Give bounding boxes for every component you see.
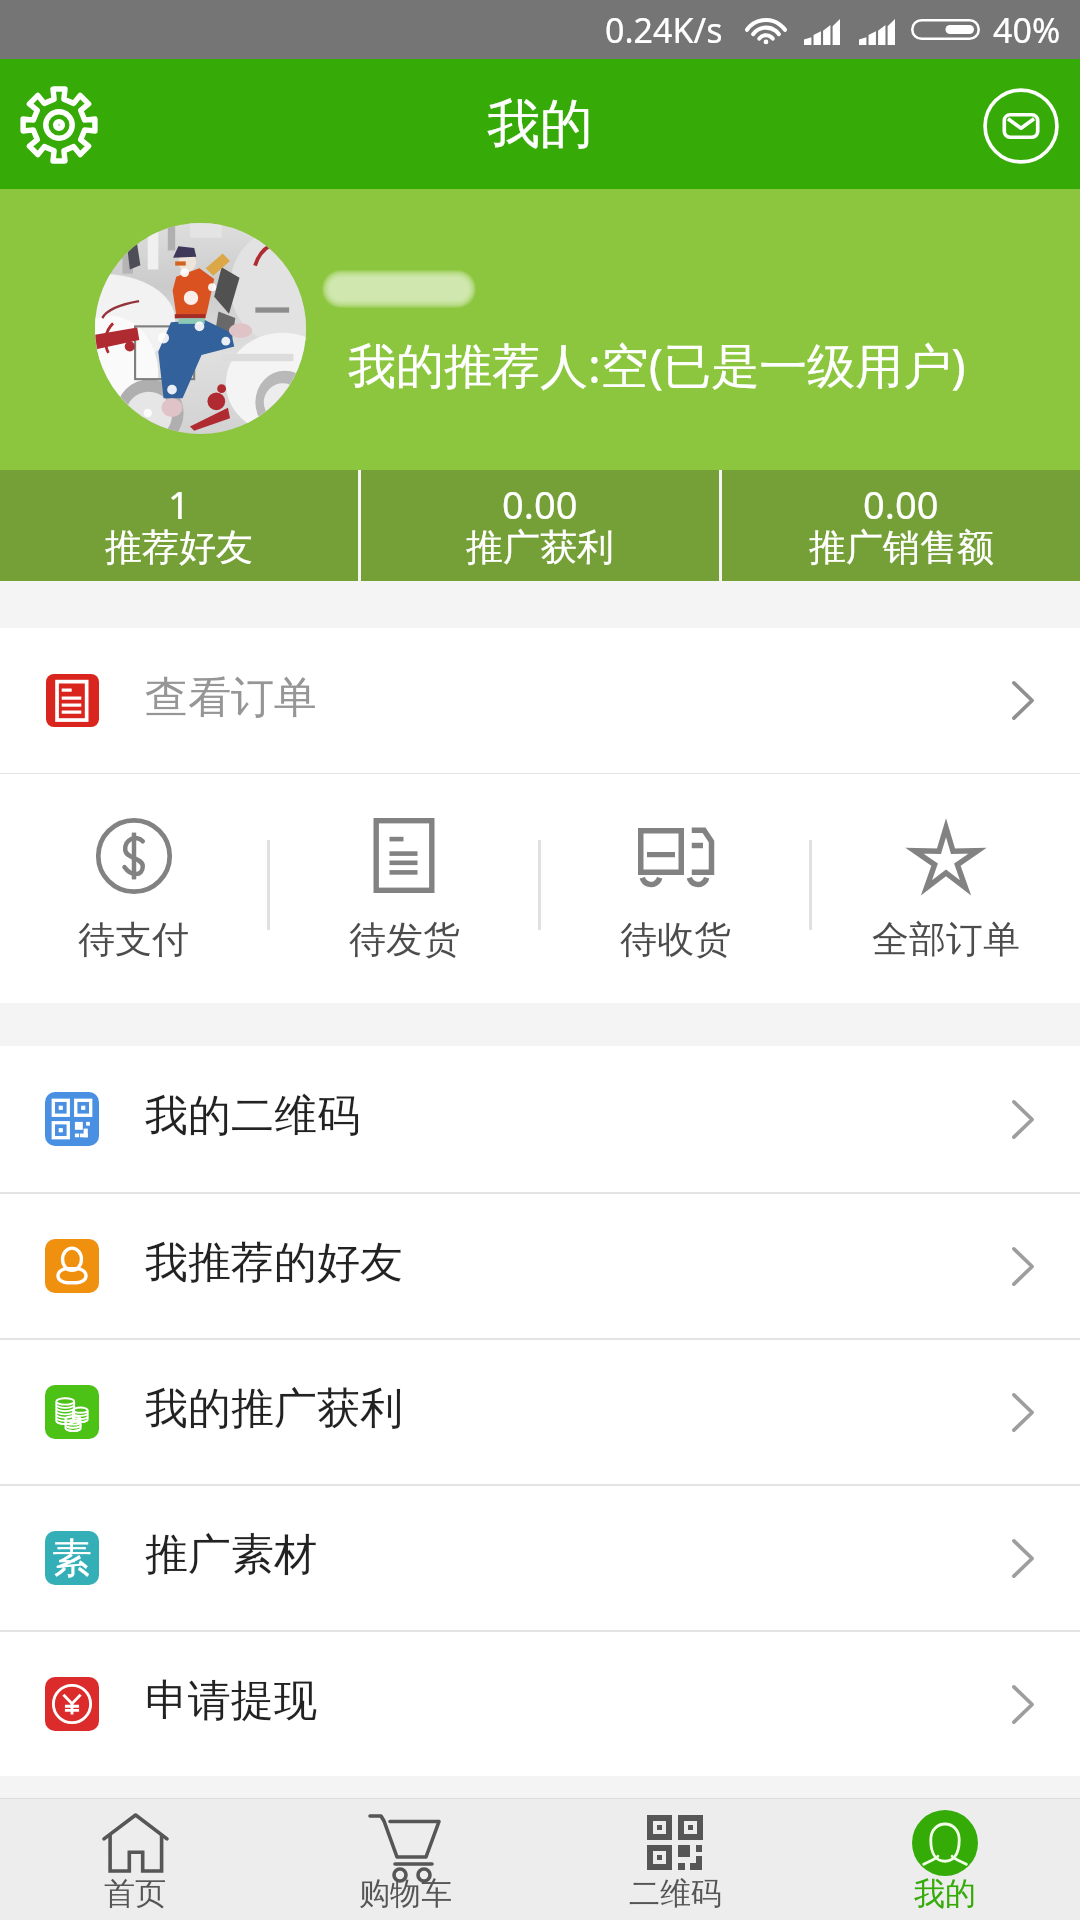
staticText: 0.00 [863,478,939,530]
button[interactable]: Avatar [95,223,306,434]
staticText: 购物车 [359,1874,452,1913]
button[interactable]: 1 [0,470,358,581]
button[interactable]: 我的 [810,1799,1080,1920]
staticText: 我的推广获利 [145,1382,403,1436]
button[interactable]: 素 [0,1486,1080,1630]
button[interactable]: 0.00 [361,470,719,581]
staticText: 素 [52,1533,92,1583]
staticText: 查看订单 [145,671,317,725]
button[interactable]: 0.00 [722,470,1080,581]
staticText: 1 [168,478,190,530]
button[interactable]: Settings [4,69,114,179]
staticText: 待支付 [78,916,189,963]
staticText: 我的推荐人:空(已是一级用户) [348,332,966,398]
staticText: 二维码 [629,1874,722,1913]
staticText: 待发货 [349,916,460,963]
button[interactable]: 查看订单 [0,628,1080,773]
staticText: 我的 [914,1874,976,1913]
button[interactable]: Messages [966,69,1076,179]
button[interactable]: 申请提现 [0,1632,1080,1776]
button[interactable]: 待支付 [0,774,267,1003]
button[interactable]: 全部订单 [812,774,1080,1003]
staticText: 全部订单 [872,916,1020,963]
button[interactable]: 购物车 [270,1799,540,1920]
staticText: 0.24K/s [605,7,723,53]
button[interactable]: 首页 [0,1799,270,1920]
button[interactable]: 我推荐的好友 [0,1194,1080,1338]
staticText: 我推荐的好友 [145,1236,403,1290]
button[interactable]: 待发货 [270,774,538,1003]
staticText: 40% [993,7,1061,53]
staticText: 0.00 [502,478,578,530]
staticText: 推荐好友 [105,524,253,571]
staticText: 申请提现 [145,1674,317,1728]
staticText: 我的二维码 [145,1089,360,1143]
staticText: 待收货 [620,916,731,963]
button[interactable]: 二维码 [540,1799,810,1920]
staticText: 我的 [487,91,593,158]
staticText: 推广获利 [466,524,614,571]
staticText: 推广素材 [145,1528,317,1582]
button[interactable]: 待收货 [541,774,809,1003]
staticText: 首页 [104,1874,166,1913]
button[interactable]: 我的推广获利 [0,1340,1080,1484]
button[interactable]: 我的二维码 [0,1046,1080,1192]
staticText: 推广销售额 [809,524,994,571]
